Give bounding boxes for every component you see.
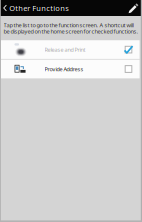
button[interactable]: Provide Address bbox=[1, 60, 140, 78]
button[interactable]: Edit bbox=[128, 1, 142, 15]
staticText: Tap the list to go to the function scree… bbox=[3, 22, 138, 34]
button[interactable]: Release and Print bbox=[1, 40, 140, 59]
button[interactable]: Other Functions bbox=[0, 1, 73, 15]
staticText: Provide Address bbox=[44, 65, 83, 73]
staticText: Release and Print bbox=[44, 46, 85, 53]
staticText: Other Functions bbox=[9, 3, 69, 13]
